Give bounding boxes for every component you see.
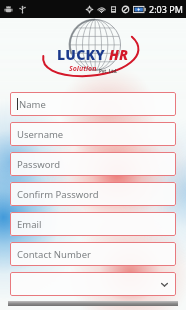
staticText: 2:03 PM [149, 3, 183, 15]
staticText: HR [109, 45, 129, 64]
staticText: Email [17, 218, 42, 231]
staticText: Solution [69, 64, 97, 74]
button[interactable]: Confirm Password [10, 182, 176, 206]
staticText: Password [17, 158, 60, 171]
staticText: Name [19, 98, 46, 111]
button[interactable]: Username [10, 122, 176, 146]
staticText: LUCKY [57, 45, 106, 64]
staticText: Contact Number [17, 248, 91, 261]
staticText: Pvt. Ltd. [99, 68, 118, 74]
staticText: Username [17, 128, 64, 141]
button[interactable]: Name [10, 92, 176, 116]
button[interactable]: Password [10, 152, 176, 176]
button[interactable]: Contact Number [10, 242, 176, 266]
button[interactable]: Email [10, 212, 176, 236]
button[interactable]: Select option [10, 272, 176, 296]
staticText: Confirm Password [17, 188, 99, 201]
